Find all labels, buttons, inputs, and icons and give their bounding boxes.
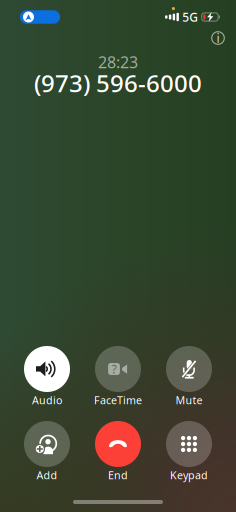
staticText: End — [108, 468, 128, 482]
staticText: (973) 596-6000 — [34, 67, 202, 99]
staticText: 5G — [182, 9, 198, 25]
button[interactable]: Keypad — [153, 421, 224, 483]
staticText: Audio — [32, 393, 62, 407]
staticText: Mute — [175, 393, 202, 407]
staticText: i — [216, 30, 219, 46]
staticText: Add — [36, 468, 57, 482]
button[interactable]: ? — [82, 346, 153, 408]
button[interactable]: Audio — [11, 346, 82, 408]
button[interactable]: Add — [11, 421, 82, 483]
button[interactable]: End — [82, 421, 153, 483]
staticText: Keypad — [170, 468, 208, 482]
button[interactable]: Call info — [205, 25, 231, 51]
staticText: 28:23 — [98, 51, 138, 73]
staticText: ? — [111, 361, 116, 377]
button[interactable]: Mute — [153, 346, 224, 408]
staticText: FaceTime — [94, 393, 142, 407]
